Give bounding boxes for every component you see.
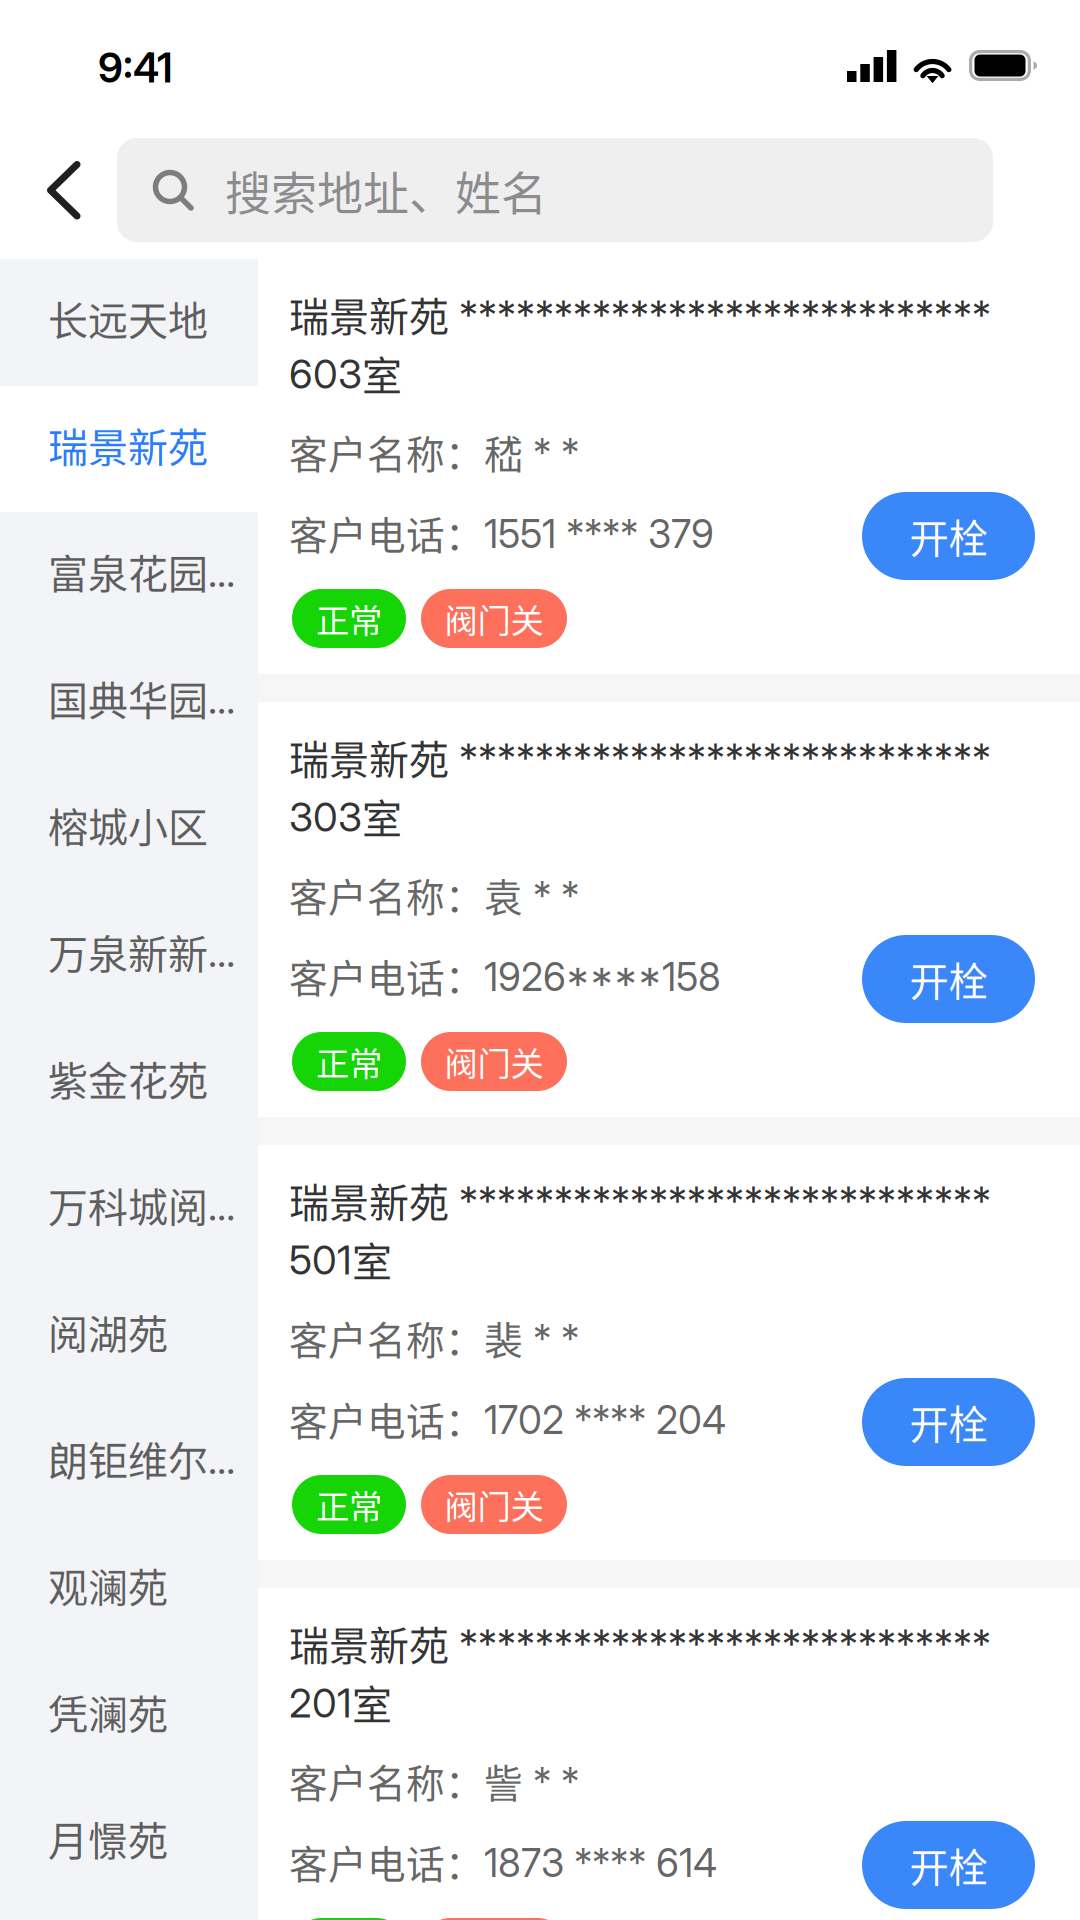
button[interactable]: 阅湖苑 <box>0 1273 258 1399</box>
button[interactable]: 搜索地址、姓名 <box>117 138 993 242</box>
staticText: 603室 <box>289 344 402 402</box>
staticText: 客户名称：袁 * * <box>289 867 579 923</box>
button[interactable]: 开栓 <box>862 935 1035 1023</box>
staticText: 201室 <box>289 1673 392 1731</box>
staticText: 开栓 <box>909 1836 987 1893</box>
staticText: 长远天地 <box>48 289 208 347</box>
staticText: 富泉花园… <box>48 542 235 600</box>
staticText: 客户名称：裴 * * <box>289 1310 579 1366</box>
button[interactable]: 国典华园… <box>0 639 258 766</box>
staticText: 客户电话：1702 **** 204 <box>289 1391 726 1447</box>
button[interactable]: 月憬苑 <box>0 1779 258 1906</box>
button[interactable]: 瑞景新苑 **************************** <box>258 702 1080 1117</box>
staticText: 正常 <box>316 594 382 643</box>
staticText: 搜索地址、姓名 <box>225 157 547 223</box>
staticText: 万科城阅… <box>48 1176 235 1234</box>
button[interactable]: Back <box>0 130 117 259</box>
staticText: 9:41 <box>98 43 173 92</box>
button[interactable]: 观澜苑 <box>0 1526 258 1653</box>
staticText: 正常 <box>316 1480 382 1529</box>
staticText: 501室 <box>289 1230 392 1288</box>
button[interactable]: 瑞景新苑 **************************** <box>258 259 1080 674</box>
staticText: 正常 <box>316 1037 382 1086</box>
button[interactable]: 瑞景新苑 **************************** <box>258 1588 1080 1920</box>
staticText: 阅湖苑 <box>48 1303 168 1360</box>
button[interactable]: 万泉新新… <box>0 892 258 1019</box>
button[interactable]: 长远天地 <box>0 259 258 386</box>
staticText: 国典华园… <box>48 669 235 727</box>
staticText: 303室 <box>289 787 402 845</box>
button[interactable]: 榕城小区 <box>0 766 258 892</box>
staticText: 开栓 <box>909 950 987 1007</box>
button[interactable]: 瑞景新苑 **************************** <box>258 1145 1080 1560</box>
staticText: 客户电话：1551 **** 379 <box>289 505 714 561</box>
staticText: 开栓 <box>909 507 987 564</box>
staticText: 开栓 <box>909 1393 987 1450</box>
button[interactable]: 凭澜苑 <box>0 1653 258 1779</box>
button[interactable]: 开栓 <box>862 492 1035 580</box>
staticText: 瑞景新苑 <box>48 416 208 474</box>
staticText: 瑞景新苑 **************************** <box>289 1614 991 1672</box>
button[interactable]: 开栓 <box>862 1821 1035 1909</box>
staticText: 阀门关 <box>444 1037 543 1086</box>
button[interactable]: 朗钜维尔… <box>0 1399 258 1526</box>
button[interactable]: 万科城阅… <box>0 1146 258 1273</box>
button[interactable]: 富泉花园… <box>0 512 258 639</box>
button[interactable]: 瑞景新苑 <box>0 386 258 512</box>
button[interactable]: 开栓 <box>862 1378 1035 1466</box>
staticText: 阀门关 <box>444 1480 543 1529</box>
staticText: 榕城小区 <box>48 796 208 854</box>
staticText: 凭澜苑 <box>48 1683 168 1741</box>
staticText: 瑞景新苑 **************************** <box>289 1171 991 1229</box>
staticText: 客户名称：嵇 * * <box>289 424 579 480</box>
staticText: 阀门关 <box>444 594 543 643</box>
staticText: 瑞景新苑 **************************** <box>289 728 991 786</box>
staticText: 瑞景新苑 **************************** <box>289 285 991 343</box>
staticText: 万泉新新… <box>48 922 235 980</box>
staticText: 观澜苑 <box>48 1556 168 1614</box>
staticText: 客户名称：訾 * * <box>289 1753 579 1809</box>
staticText: 朗钜维尔… <box>48 1429 235 1487</box>
button[interactable]: 紫金花苑 <box>0 1019 258 1146</box>
staticText: 客户电话：1926****158 <box>289 948 721 1004</box>
staticText: 客户电话：1873 **** 614 <box>289 1834 717 1890</box>
staticText: 紫金花苑 <box>48 1049 208 1107</box>
staticText: 月憬苑 <box>48 1809 168 1867</box>
